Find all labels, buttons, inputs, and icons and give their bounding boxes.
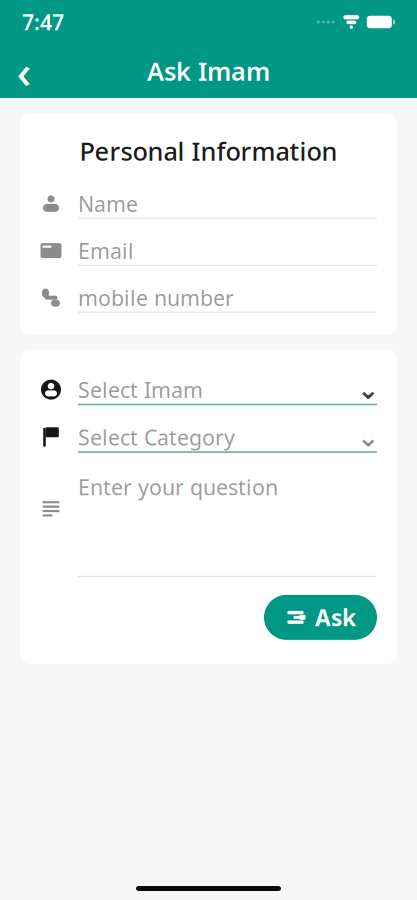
staticText: Select Imam	[78, 375, 203, 404]
button[interactable]: Back	[0, 47, 48, 95]
button[interactable]: Select Category	[40, 405, 377, 453]
button[interactable]: Name	[40, 190, 377, 219]
staticText: ‹	[16, 41, 31, 101]
staticText: Select Category	[78, 423, 235, 451]
button[interactable]: Email	[40, 219, 377, 266]
button[interactable]: mobile number	[40, 266, 377, 313]
staticText: 7:47	[22, 8, 64, 36]
staticText: Enter your question	[78, 473, 278, 501]
staticText: Name	[78, 189, 138, 218]
staticText: Personal Information	[79, 134, 337, 168]
staticText: ⌄	[357, 422, 379, 452]
staticText: Ask Imam	[147, 54, 270, 88]
button[interactable]: Ask	[264, 595, 377, 640]
button[interactable]: Enter your question	[40, 453, 377, 577]
staticText: Email	[78, 236, 134, 265]
button[interactable]: Select Imam	[40, 350, 377, 405]
staticText: mobile number	[78, 283, 234, 312]
staticText: ⌄	[357, 374, 379, 405]
staticText: Ask	[315, 602, 356, 632]
